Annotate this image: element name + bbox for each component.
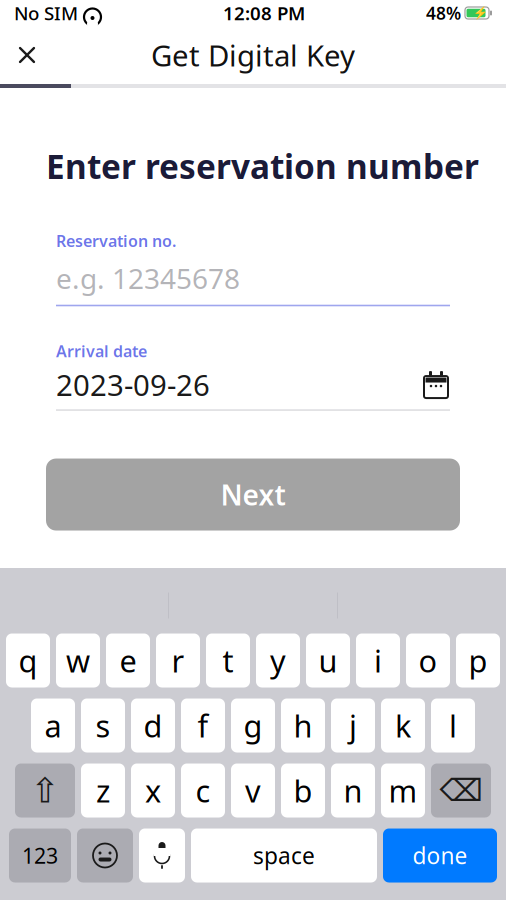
staticText: r [171, 640, 184, 681]
staticText: j [349, 705, 357, 746]
button[interactable]: t [206, 633, 250, 687]
button[interactable]: p [456, 633, 500, 687]
staticText: l [449, 705, 457, 746]
staticText: t [222, 640, 233, 681]
button[interactable]: u [306, 633, 350, 687]
staticText: c [195, 770, 210, 811]
button[interactable]: n [331, 763, 375, 817]
staticText: i [374, 640, 382, 681]
staticText: ⌫ [439, 773, 482, 808]
button[interactable]: o [406, 633, 450, 687]
button[interactable]: b [281, 763, 325, 817]
button[interactable]: done [383, 828, 497, 882]
staticText: Enter reservation number [46, 144, 479, 188]
staticText: 2023-09-26 [56, 365, 210, 404]
button[interactable]: c [181, 763, 225, 817]
button[interactable]: space [191, 828, 377, 882]
button[interactable]: f [181, 698, 225, 752]
staticText: s [95, 705, 110, 746]
button[interactable]: y [256, 633, 300, 687]
staticText: space [253, 840, 315, 870]
button[interactable]: Delete [431, 763, 491, 817]
button[interactable]: Next [46, 458, 460, 530]
staticText: k [395, 705, 411, 746]
button[interactable]: w [56, 633, 100, 687]
button[interactable]: m [381, 763, 425, 817]
staticText: 12:08 PM [223, 1, 305, 25]
staticText: No SIM [14, 1, 78, 25]
staticText: done [412, 840, 467, 870]
button[interactable]: r [156, 633, 200, 687]
button[interactable]: k [381, 698, 425, 752]
staticText: g [243, 705, 262, 746]
button[interactable]: e [106, 633, 150, 687]
staticText: 48% [426, 1, 461, 24]
button[interactable]: z [81, 763, 125, 817]
staticText: x [145, 770, 161, 811]
button[interactable]: g [231, 698, 275, 752]
staticText: e.g. 12345678 [56, 259, 240, 297]
button[interactable]: 2023-09-26 [56, 367, 450, 401]
staticText: n [343, 770, 362, 811]
button[interactable]: h [281, 698, 325, 752]
staticText: v [245, 770, 261, 811]
staticText: b [293, 770, 312, 811]
staticText: h [293, 705, 312, 746]
staticText: Arrival date [56, 340, 147, 361]
staticText: o [418, 640, 437, 681]
staticText: ⚡ [472, 6, 487, 20]
staticText: p [468, 640, 487, 681]
button[interactable]: Close [0, 28, 54, 82]
button[interactable]: s [81, 698, 125, 752]
staticText: w [66, 640, 90, 681]
button[interactable]: Shift [15, 763, 75, 817]
staticText: u [318, 640, 337, 681]
staticText: ⇧ [30, 771, 59, 810]
button[interactable]: Emoji [77, 828, 133, 882]
staticText: y [270, 640, 286, 681]
staticText: q [18, 640, 37, 681]
staticText: m [388, 770, 417, 811]
staticText: Next [220, 476, 285, 513]
staticText: e [119, 640, 136, 681]
button[interactable]: x [131, 763, 175, 817]
staticText: Reservation no. [56, 230, 176, 251]
button[interactable]: q [6, 633, 50, 687]
staticText: Get Digital Key [151, 35, 355, 74]
staticText: f [197, 705, 208, 746]
button[interactable]: v [231, 763, 275, 817]
staticText: z [96, 770, 110, 811]
staticText: d [143, 705, 162, 746]
button[interactable]: Dictation [139, 828, 185, 882]
button[interactable]: a [31, 698, 75, 752]
staticText: 123 [22, 841, 58, 870]
button[interactable]: j [331, 698, 375, 752]
staticText: a [44, 705, 61, 746]
button[interactable]: i [356, 633, 400, 687]
button[interactable]: 123 [9, 828, 71, 882]
button[interactable]: d [131, 698, 175, 752]
button[interactable]: l [431, 698, 475, 752]
